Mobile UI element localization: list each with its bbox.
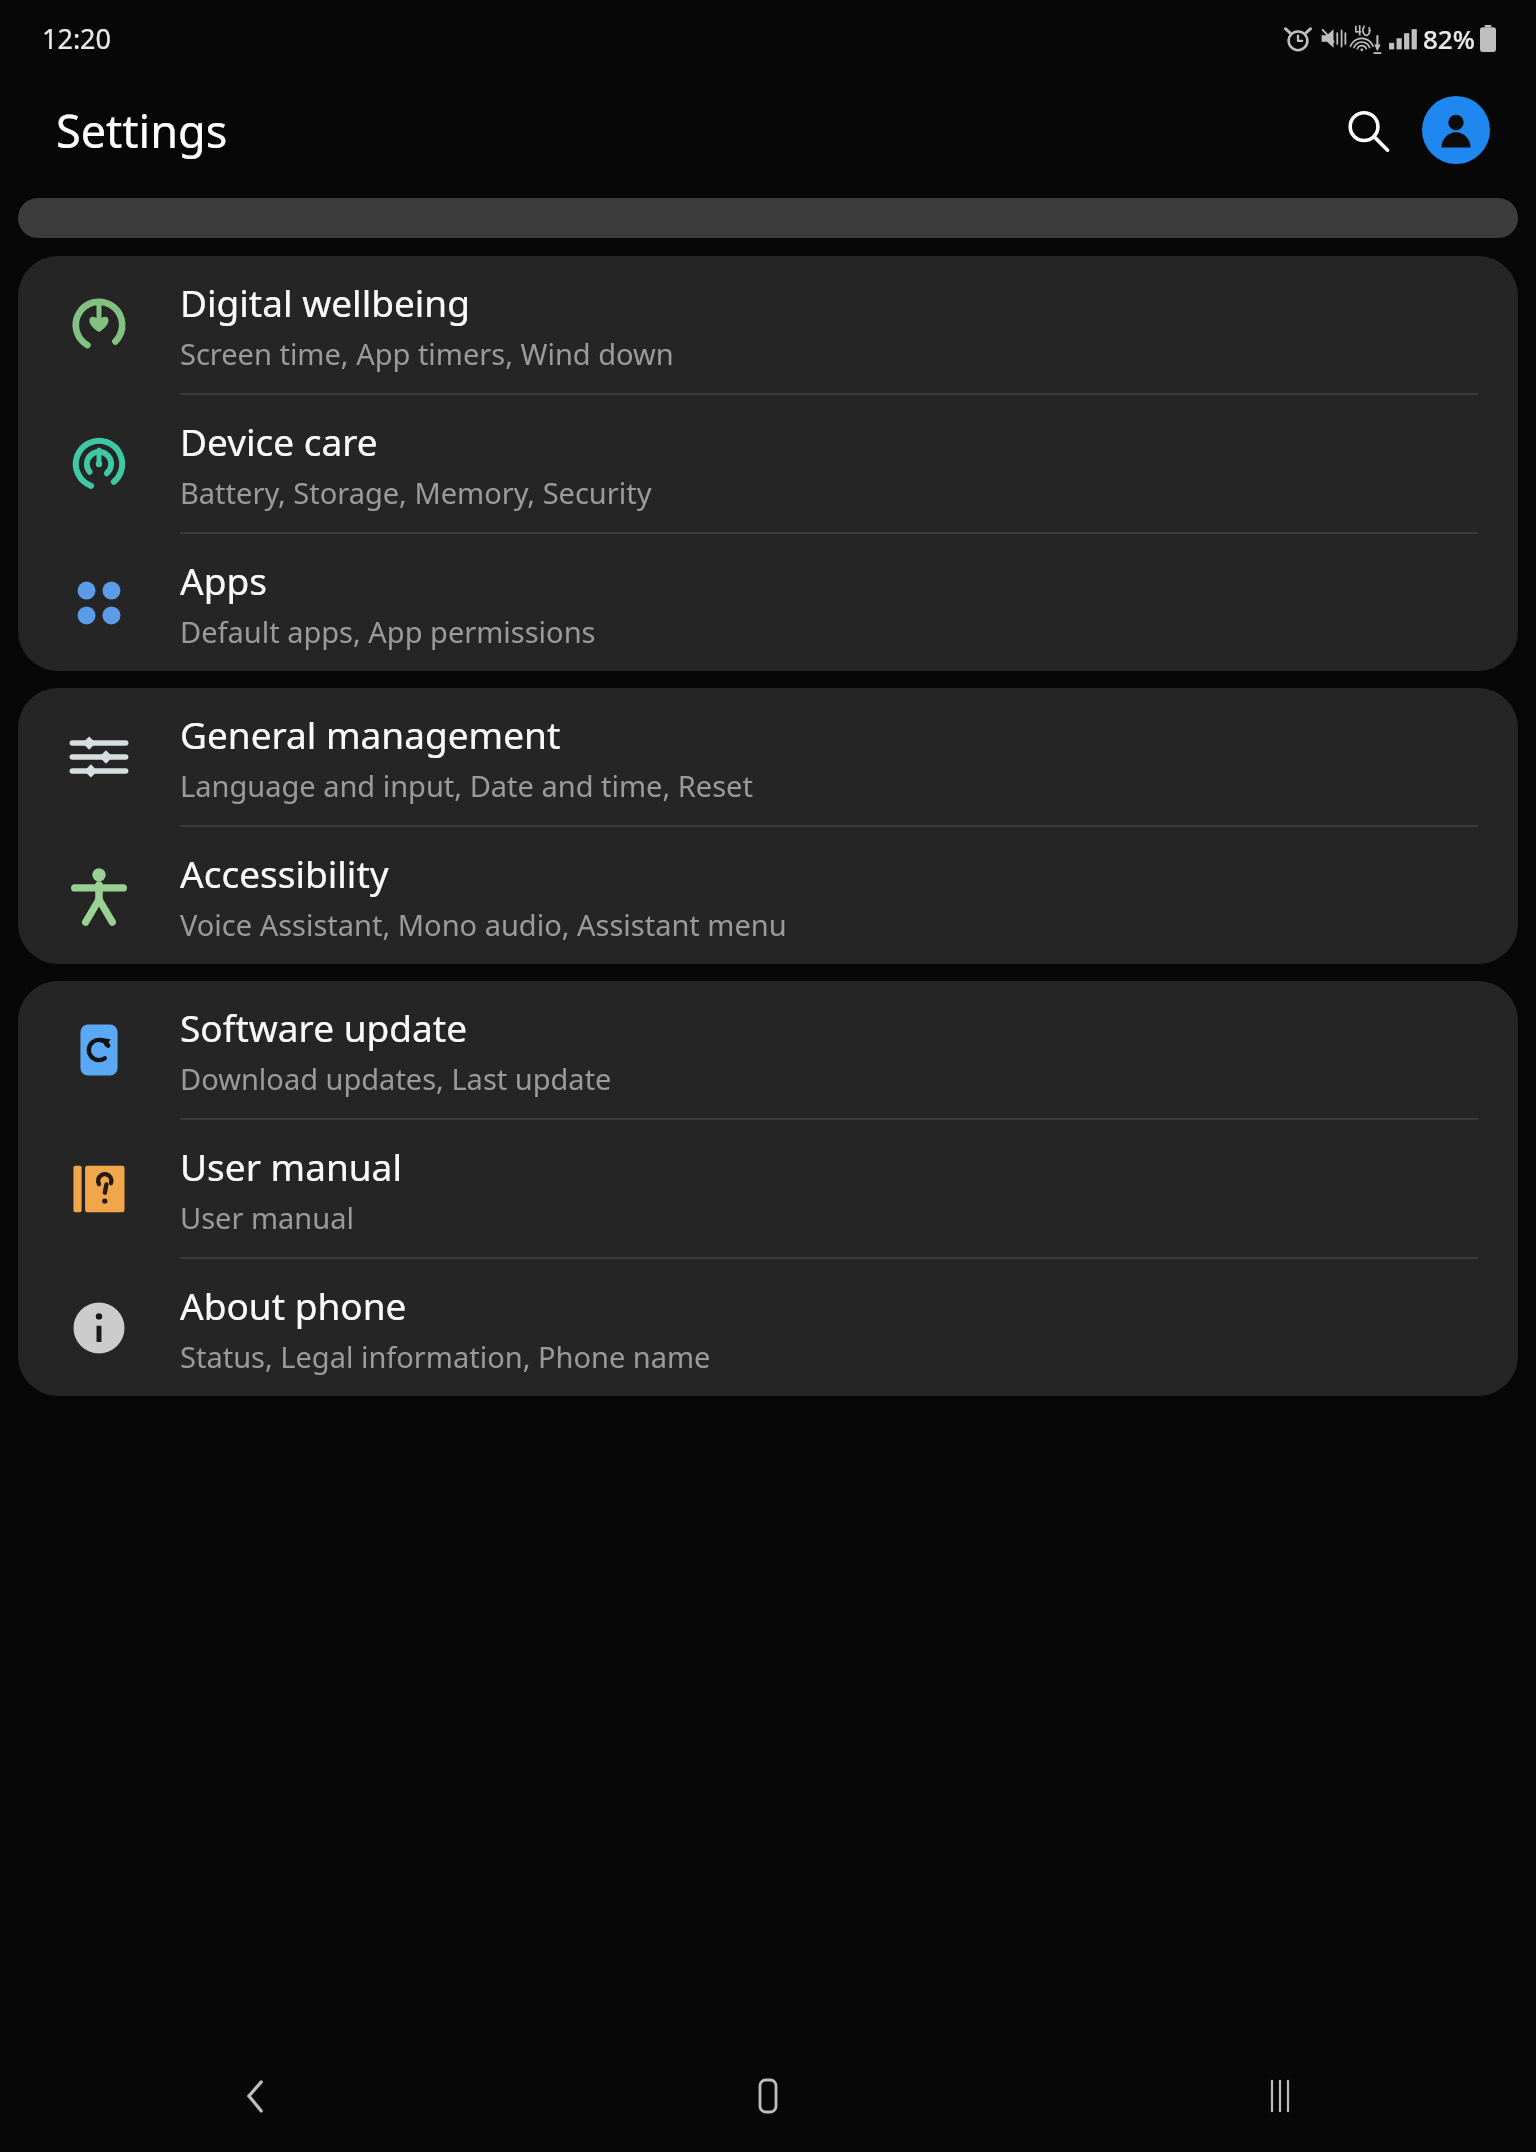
button[interactable]: Accessibility — [18, 827, 1518, 964]
staticText: Digital wellbeing — [180, 277, 470, 327]
staticText: Apps — [180, 555, 267, 605]
staticText: General management — [180, 709, 561, 759]
staticText: Settings — [56, 100, 228, 161]
staticText: Default apps, App permissions — [180, 612, 596, 651]
button[interactable]: Digital wellbeing — [18, 256, 1518, 395]
button[interactable]: Back — [0, 2040, 512, 2152]
staticText: Accessibility — [180, 848, 389, 898]
button[interactable]: Apps — [18, 534, 1518, 671]
button[interactable]: About phone — [18, 1259, 1518, 1396]
button[interactable]: Home — [512, 2040, 1024, 2152]
staticText: Status, Legal information, Phone name — [180, 1337, 711, 1376]
button[interactable]: Recent apps — [1024, 2040, 1536, 2152]
staticText: User manual — [180, 1141, 402, 1191]
button[interactable]: Search — [1334, 97, 1400, 163]
staticText: Battery, Storage, Memory, Security — [180, 473, 652, 512]
button[interactable]: Search settings — [18, 198, 1518, 238]
button[interactable]: User manual — [18, 1120, 1518, 1259]
staticText: User manual — [180, 1198, 354, 1237]
staticText: 12:20 — [42, 20, 112, 57]
button[interactable]: Account — [1422, 96, 1490, 164]
staticText: 82% — [1423, 21, 1475, 56]
button[interactable]: Device care — [18, 395, 1518, 534]
staticText: Device care — [180, 416, 378, 466]
button[interactable]: Software update — [18, 981, 1518, 1120]
staticText: Download updates, Last update — [180, 1059, 612, 1098]
staticText: About phone — [180, 1280, 407, 1330]
staticText: Software update — [180, 1002, 468, 1052]
staticText: Screen time, App timers, Wind down — [180, 334, 674, 373]
staticText: Voice Assistant, Mono audio, Assistant m… — [180, 905, 787, 944]
staticText: Language and input, Date and time, Reset — [180, 766, 753, 805]
button[interactable]: General management — [18, 688, 1518, 827]
